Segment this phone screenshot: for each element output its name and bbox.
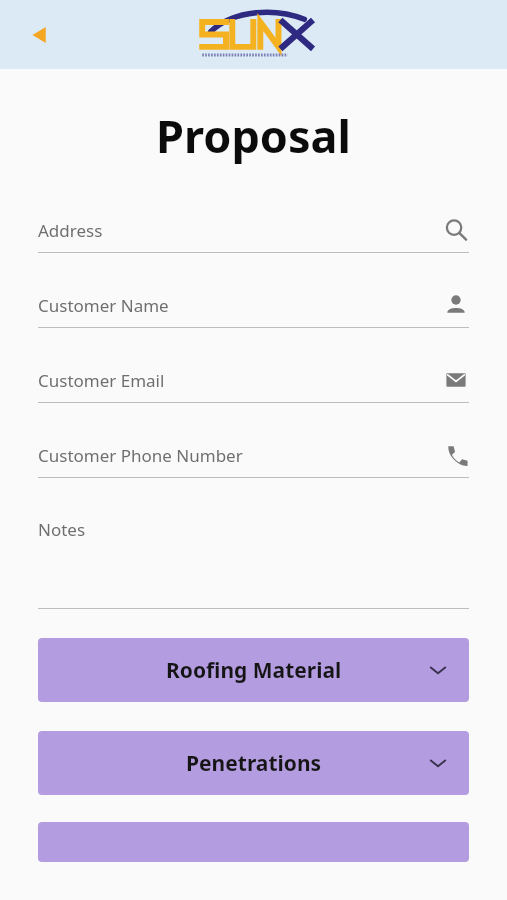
staticText: Address (38, 219, 443, 242)
button[interactable]: Customer Name (38, 283, 469, 358)
button[interactable]: Customer Phone Number (38, 433, 469, 508)
staticText: Roofing Material (166, 656, 342, 685)
other: Search address (444, 218, 468, 242)
button[interactable]: Roofing Material (38, 638, 469, 702)
other: Customer phone number (444, 443, 468, 467)
staticText: Customer Phone Number (38, 444, 443, 467)
staticText: Proposal (0, 105, 507, 166)
staticText: Penetrations (186, 749, 322, 778)
other: SunX Professional Roofing Quotes (184, 8, 324, 62)
other: Customer email (444, 368, 468, 392)
staticText: Customer Email (38, 369, 443, 392)
button[interactable]: Notes (38, 508, 469, 609)
button[interactable]: Address (38, 208, 469, 283)
other: Customer name (444, 293, 468, 317)
staticText: Customer Name (38, 294, 443, 317)
button[interactable]: Customer Email (38, 358, 469, 433)
staticText: Notes (38, 518, 86, 541)
button[interactable]: Penetrations (38, 731, 469, 795)
button[interactable]: Back (20, 15, 60, 55)
